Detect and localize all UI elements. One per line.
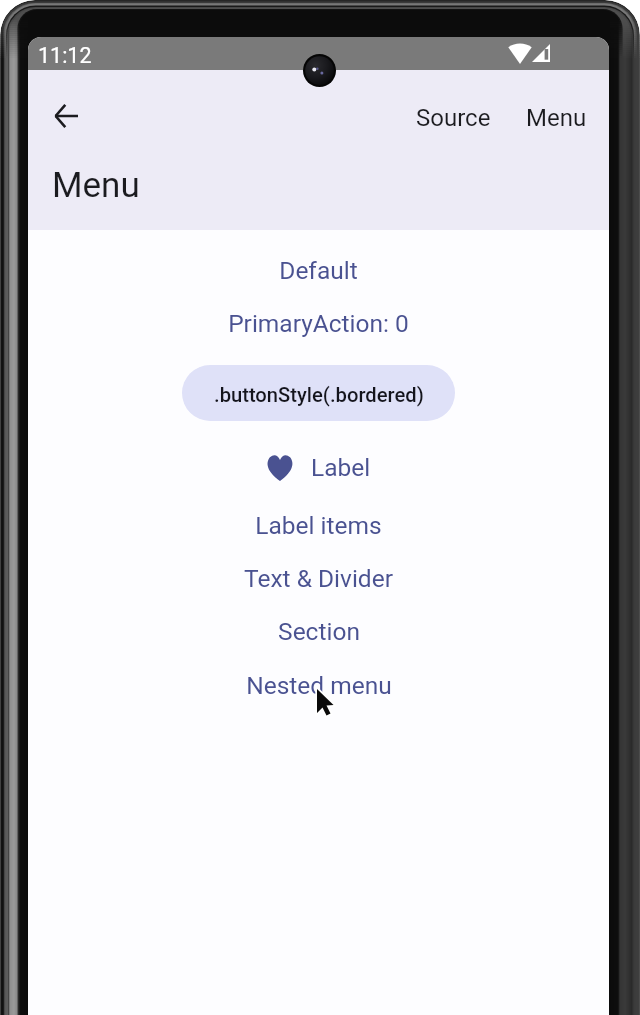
button[interactable]: Menu: [516, 94, 597, 142]
staticText: Menu: [52, 165, 140, 206]
staticText: 11:12: [38, 43, 92, 68]
staticText: Nested menu: [246, 671, 392, 700]
staticText: Menu: [526, 104, 587, 132]
staticText: Section: [278, 617, 360, 646]
button[interactable]: Label items: [245, 507, 392, 544]
button[interactable]: Label: [260, 447, 377, 488]
staticText: Source: [416, 104, 491, 132]
button[interactable]: Section: [268, 613, 370, 650]
staticText: Label items: [255, 511, 382, 540]
staticText: Label: [311, 453, 371, 482]
button[interactable]: PrimaryAction: 0: [218, 305, 419, 342]
button[interactable]: Back: [42, 92, 90, 140]
button[interactable]: .buttonStyle(.bordered): [182, 365, 455, 421]
button[interactable]: Text & Divider: [234, 560, 403, 597]
staticText: Default: [279, 256, 358, 285]
button[interactable]: Nested menu: [236, 667, 402, 704]
staticText: Text & Divider: [244, 564, 393, 593]
button[interactable]: Default: [269, 252, 368, 289]
staticText: .buttonStyle(.bordered): [214, 383, 424, 407]
staticText: PrimaryAction: 0: [228, 309, 409, 338]
button[interactable]: Source: [406, 94, 501, 142]
